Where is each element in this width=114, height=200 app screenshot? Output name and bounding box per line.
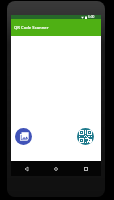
button[interactable]: Back [11, 161, 41, 176]
staticText: 6:00 [88, 15, 95, 19]
button[interactable]: Recent apps [71, 161, 101, 176]
staticText: QR Code Scanner [14, 25, 49, 31]
button[interactable]: Home [41, 161, 71, 176]
button[interactable]: Pick image from gallery [15, 128, 32, 145]
button[interactable]: Scan QR code [77, 128, 94, 145]
